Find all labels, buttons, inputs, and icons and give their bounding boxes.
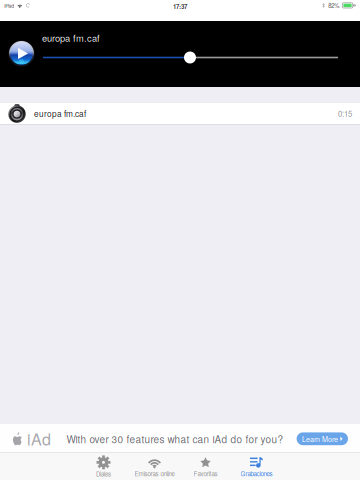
staticText: 17:37 — [173, 2, 187, 11]
staticText: europa fm.caf — [42, 31, 100, 44]
button[interactable]: Grabaciones — [231, 452, 282, 479]
button[interactable]: Diales — [78, 452, 129, 479]
button[interactable]: Favoritas — [180, 452, 231, 479]
button[interactable]: Learn More — [297, 432, 348, 445]
button[interactable]: Play — [8, 40, 35, 67]
staticText: iPad — [4, 2, 14, 9]
staticText: iAd — [27, 427, 51, 450]
staticText: europa fm.caf — [34, 108, 86, 119]
staticText: With over 30 features what can iAd do fo… — [67, 432, 284, 446]
staticText: Diales — [96, 469, 111, 478]
staticText: Learn More — [302, 434, 338, 444]
staticText: Favoritas — [193, 469, 217, 478]
staticText: Grabaciones — [240, 469, 272, 478]
button[interactable]: Emisoras online — [129, 452, 180, 479]
staticText: Emisoras online — [134, 469, 174, 478]
staticText: 0:15 — [338, 108, 352, 119]
button[interactable]: europa fm.caf — [0, 102, 360, 124]
staticText: 82% — [328, 1, 339, 10]
